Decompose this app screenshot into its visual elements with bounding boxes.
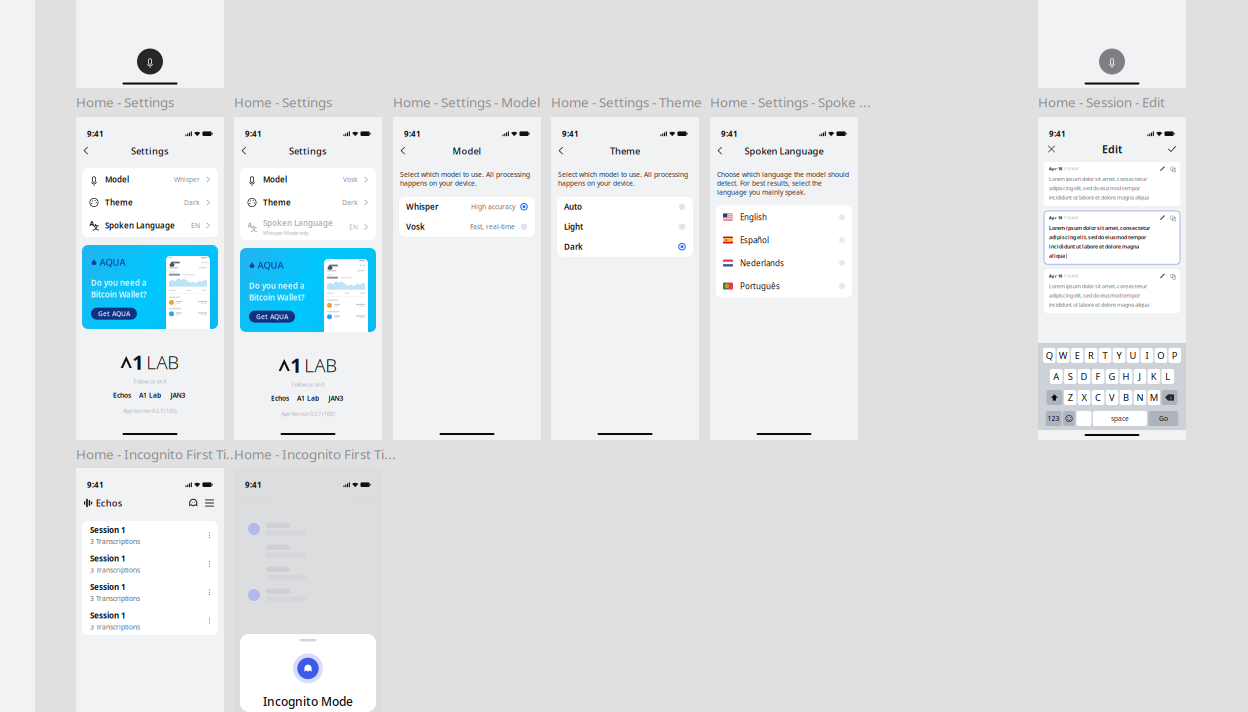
button[interactable]: Back	[80, 143, 94, 159]
button[interactable]: Y	[1113, 348, 1125, 363]
button[interactable]: English	[716, 206, 852, 229]
staticText: Echos	[271, 394, 289, 403]
staticText: aliqua|	[1049, 252, 1068, 259]
button[interactable]: Model	[82, 168, 218, 191]
button[interactable]: R	[1085, 348, 1097, 363]
button[interactable]: Menu	[200, 497, 216, 508]
staticText: Bitcoin Wallet?	[91, 289, 147, 300]
staticText: Incognito Mode	[263, 693, 353, 709]
button[interactable]: Light	[557, 217, 693, 237]
button[interactable]: Session 1	[82, 578, 218, 606]
staticText: A	[1053, 370, 1059, 383]
staticText: EN	[191, 221, 200, 230]
button[interactable]: A	[1050, 369, 1062, 384]
button[interactable]: Edit	[1160, 273, 1165, 278]
button[interactable]: Echos	[108, 391, 136, 399]
staticText: W	[1059, 349, 1068, 362]
button[interactable]: Emoji	[1063, 411, 1075, 426]
staticText: T	[1102, 349, 1107, 362]
button[interactable]: 123	[1046, 411, 1062, 426]
button[interactable]: S	[1064, 369, 1076, 384]
staticText: Session 1	[90, 553, 126, 564]
button[interactable]: H	[1120, 369, 1132, 384]
staticText: P	[1172, 349, 1178, 362]
button[interactable]: Close	[1044, 141, 1059, 156]
button[interactable]: E	[1071, 348, 1083, 363]
button[interactable]: Done	[1164, 142, 1180, 156]
button[interactable]: I	[1141, 348, 1153, 363]
button[interactable]: Z	[1064, 390, 1076, 405]
button[interactable]: X	[1078, 390, 1090, 405]
button[interactable]: N	[1134, 390, 1146, 405]
button[interactable]: Nederlands	[716, 252, 852, 275]
button[interactable]: Português	[716, 275, 852, 298]
button[interactable]: AQUA	[240, 248, 376, 332]
button[interactable]: JAN3	[322, 394, 350, 402]
button[interactable]: A	[82, 214, 218, 237]
button[interactable]: Dark	[557, 237, 693, 257]
button[interactable]: Back	[714, 143, 728, 159]
staticText: 9:41	[87, 479, 104, 490]
button[interactable]: Back	[397, 143, 411, 159]
button[interactable]: G	[1106, 369, 1118, 384]
button[interactable]: Record	[1099, 48, 1125, 74]
staticText: N	[1136, 391, 1143, 404]
button[interactable]: B	[1120, 390, 1132, 405]
button[interactable]: Echos	[266, 394, 294, 402]
button[interactable]: L	[1161, 369, 1174, 384]
button[interactable]: Go	[1148, 411, 1178, 426]
button[interactable]: Whisper	[399, 197, 535, 217]
button[interactable]: W	[1057, 348, 1069, 363]
button[interactable]: A1 Lab	[136, 391, 164, 399]
button[interactable]: Copy	[1165, 166, 1175, 171]
button[interactable]: M	[1148, 390, 1160, 405]
button[interactable]: Edit	[1160, 215, 1165, 220]
button[interactable]: Theme	[82, 191, 218, 214]
button[interactable]: Back	[555, 143, 569, 159]
button[interactable]: Auto	[557, 197, 693, 217]
button[interactable]: D	[1078, 369, 1090, 384]
button[interactable]: Record	[137, 48, 163, 74]
button[interactable]: F	[1092, 369, 1104, 384]
button[interactable]: Session 1	[82, 606, 218, 635]
button[interactable]: Q	[1043, 348, 1055, 363]
button[interactable]: A1 Lab	[294, 394, 322, 402]
button[interactable]: U	[1127, 348, 1139, 363]
staticText: 9:41	[87, 128, 104, 139]
button[interactable]: Shift	[1046, 390, 1062, 405]
button[interactable]: Español	[716, 229, 852, 252]
button[interactable]: A	[240, 214, 376, 240]
button[interactable]: Vosk	[399, 217, 535, 237]
button[interactable]	[1076, 411, 1091, 426]
staticText: AQUA	[257, 259, 283, 271]
staticText: Lorem ipsum dolor sit amet, consectetur	[1049, 175, 1147, 182]
staticText: Session 1	[90, 525, 126, 535]
staticText: Get AQUA	[98, 309, 130, 318]
staticText: K	[1151, 370, 1157, 383]
staticText: LAB	[146, 350, 179, 374]
button[interactable]: Model	[240, 168, 376, 191]
button[interactable]: space	[1093, 411, 1147, 426]
button[interactable]: Back	[238, 143, 252, 159]
button[interactable]: P	[1168, 348, 1181, 363]
staticText: G	[1108, 370, 1115, 383]
button[interactable]: Theme	[240, 191, 376, 214]
button[interactable]: Copy	[1165, 215, 1175, 220]
button[interactable]: Edit	[1160, 166, 1165, 171]
button[interactable]: Session 1	[82, 549, 218, 578]
button[interactable]: K	[1148, 369, 1160, 384]
button[interactable]: O	[1155, 348, 1167, 363]
staticText: Spoken Language	[105, 220, 175, 231]
button[interactable]: T	[1099, 348, 1111, 363]
button[interactable]: Session 1	[82, 521, 218, 549]
button[interactable]: JAN3	[164, 391, 192, 399]
button[interactable]: Delete	[1161, 390, 1177, 405]
button[interactable]: Copy	[1165, 273, 1175, 278]
staticText: space	[1111, 414, 1129, 423]
button[interactable]: J	[1134, 369, 1146, 384]
button[interactable]: AQUA	[82, 245, 218, 329]
button[interactable]: Incognito	[186, 496, 200, 510]
button[interactable]: V	[1106, 390, 1118, 405]
staticText: F	[1095, 370, 1100, 383]
button[interactable]: C	[1092, 390, 1104, 405]
